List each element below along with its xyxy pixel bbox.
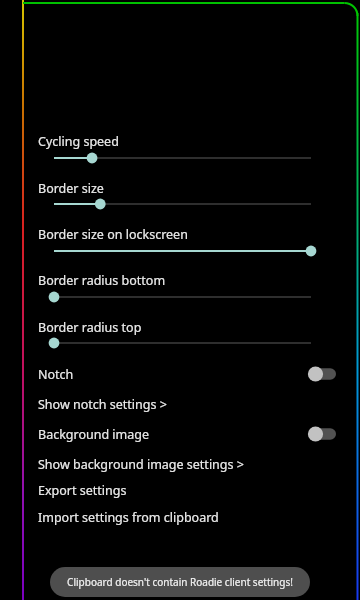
- staticText: Border radius bottom: [38, 272, 166, 289]
- button[interactable]: Show notch settings >: [0, 391, 360, 417]
- button[interactable]: Show background image settings >: [0, 451, 360, 477]
- button[interactable]: Background image: [0, 419, 360, 449]
- staticText: Cycling speed: [38, 133, 119, 150]
- staticText: Border radius top: [38, 319, 142, 336]
- staticText: Border size on lockscreen: [38, 226, 188, 243]
- button[interactable]: Border size: [38, 192, 322, 216]
- button[interactable]: Cycling speed: [38, 146, 322, 170]
- staticText: Import settings from clipboard: [38, 509, 219, 526]
- staticText: Border size: [38, 180, 104, 197]
- button[interactable]: Notch: [0, 359, 360, 389]
- staticText: Clipboard doesn't contain Roadie client …: [67, 575, 293, 589]
- staticText: Background image: [38, 426, 150, 443]
- button[interactable]: Export settings: [0, 477, 360, 503]
- staticText: Export settings: [38, 482, 127, 499]
- staticText: Notch: [38, 366, 74, 383]
- button[interactable]: Border size on lockscreen: [38, 239, 322, 263]
- staticText: Show background image settings >: [38, 456, 244, 473]
- button[interactable]: Border radius bottom: [38, 285, 322, 309]
- button[interactable]: Import settings from clipboard: [0, 504, 360, 530]
- button[interactable]: Border radius top: [38, 331, 322, 355]
- staticText: Show notch settings >: [38, 396, 167, 413]
